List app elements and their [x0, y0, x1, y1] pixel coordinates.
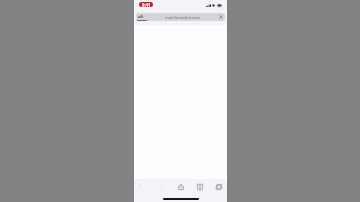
button[interactable]: Recording indicator — [139, 2, 153, 7]
button[interactable]: Share — [173, 179, 188, 194]
button[interactable]: Stop loading — [218, 14, 224, 20]
button[interactable]: Page settings — [136, 13, 145, 21]
staticText: mobile.twitter.com — [165, 15, 200, 20]
button[interactable]: Address bar — [136, 13, 225, 21]
staticText: 9:41 — [142, 2, 151, 7]
button[interactable]: Back — [133, 179, 148, 194]
button[interactable]: Tabs — [211, 179, 226, 194]
button[interactable]: Bookmarks — [192, 179, 207, 194]
